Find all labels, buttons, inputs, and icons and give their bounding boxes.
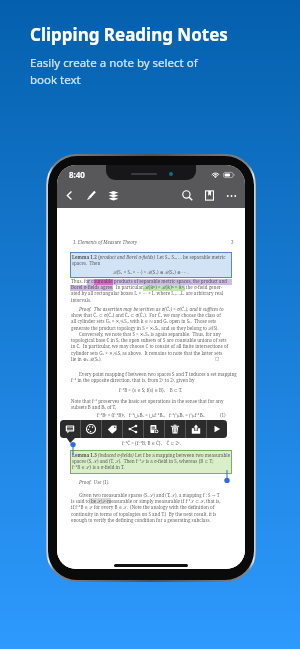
staticText: Proof. The assertion may be written as σ… (79, 306, 224, 312)
staticText: Given two measurable spaces (S, 𝒮) and (… (79, 492, 220, 498)
staticText: (1) (220, 412, 226, 418)
button[interactable]: Selection start (70, 442, 76, 455)
staticText: Proof. Use (1). (79, 479, 110, 485)
button[interactable]: Delete (166, 420, 184, 438)
staticText: □ (215, 356, 220, 361)
button[interactable]: Back (60, 183, 78, 208)
staticText: f⁻¹B = {s ∈ S; f(s) ∈ B}, B ⊂ T. (119, 387, 183, 393)
staticText: (product and Borel σ-fields) (98, 254, 157, 260)
staticText: if f⁻¹B ∈ 𝒮 for every B ∈ 𝒯. (Note the a… (71, 504, 215, 510)
staticText: spaces. Then (72, 260, 101, 266)
staticText: Borel σ-fields agree. In particular, ℬ(ℝ… (71, 284, 223, 290)
staticText: f⁻¹Ĉ = {f⁻¹B; B ∈ Ĉ}, Ĉ ⊂ 2ᵀ. (122, 440, 181, 446)
staticText: cylinder sets Gₖ × ✕ⱼ≠ₖSⱼ as above. It r… (71, 350, 223, 356)
button[interactable]: Tag (103, 420, 121, 438)
staticText: Thus, for countable products of separabl… (71, 278, 228, 284)
staticText: Note that f⁻¹ preserves the basic set op… (71, 398, 224, 404)
staticText: is said to be 𝒮/𝒯-measurable or simply m… (71, 498, 221, 504)
staticText: ated by all rectangular boxes I₁ × ⋯ × I… (71, 290, 224, 296)
staticText: (induced σ-fields) (98, 452, 135, 458)
staticText: Lemma 1.2 (72, 254, 98, 260)
button[interactable]: Selection end (224, 470, 230, 483)
button[interactable]: Bookmark (200, 183, 218, 208)
button[interactable]: Layers (104, 183, 122, 208)
staticText: 8:40 (69, 169, 85, 180)
button[interactable]: Share (124, 420, 142, 438)
staticText: enough to verify the defining condition … (71, 517, 211, 523)
staticText: lie in ⊗ₖ ℬ(Sₖ). (71, 356, 102, 362)
button[interactable]: Color (82, 420, 100, 438)
staticText: Every point mapping f between two spaces… (79, 371, 237, 377)
button[interactable]: Export (187, 420, 205, 438)
staticText: f⁻¹B ∈ 𝒮} is a σ-field in T. (72, 464, 125, 470)
staticText: Lemma 1.3 (72, 452, 98, 458)
staticText: subsets B and Bₖ of T, (71, 404, 117, 410)
button[interactable]: More (222, 183, 240, 208)
button[interactable]: Note (61, 420, 79, 438)
button[interactable]: Edit (82, 183, 100, 208)
staticText: Let f be a mapping between two measurabl… (135, 452, 231, 458)
staticText: Clipping Reading Notes (30, 23, 228, 46)
staticText: f⁻¹Bᶜ = (f⁻¹B)ᶜ, f⁻¹⋃ₖBₖ = ⋃ₖf⁻¹Bₖ, f⁻¹⋂… (97, 412, 206, 418)
staticText: Easily create a note by select of book t… (30, 55, 198, 87)
staticText: Let S₁, S₂, … be separable metric (157, 254, 226, 260)
staticText: continuity in terms of topologies on S a… (71, 511, 217, 517)
staticText: 1. Elements of Measure Theory (73, 239, 138, 245)
staticText: 3 (231, 239, 234, 245)
button[interactable]: Search (178, 183, 196, 208)
staticText: all cylinder sets Gₖ × ✕ⱼ≠ₖSⱼ, with k ∈ … (71, 318, 217, 324)
staticText: topological base C in S, the open subset… (71, 337, 227, 343)
button[interactable]: Copy (145, 420, 163, 438)
staticText: ℬ(S₁ × S₂ × ⋯) = ℬ(S₁) ⊗ ℬ(S₂) ⊗ ⋯ . (113, 269, 189, 275)
staticText: intervals. (71, 297, 92, 303)
staticText: Conversely, we note that S = ✕ₖSₖ is aga… (79, 331, 221, 337)
staticText: generate the product topology in S = ✕ₖS… (71, 325, 219, 331)
staticText: show that Ĉ₁ ⊂ σ(Ĉ₂) and Ĉ₂ ⊂ σ(Ĉ₁). For… (71, 312, 221, 318)
staticText: spaces (S, 𝒮) and (T, 𝒯). Then f⁻¹𝒯 is a… (72, 458, 214, 464)
staticText: in C. In particular, we may choose C to … (71, 343, 229, 349)
button[interactable]: Next (208, 420, 226, 438)
staticText: f⁻¹ in the opposite direction, that is, … (71, 377, 195, 383)
